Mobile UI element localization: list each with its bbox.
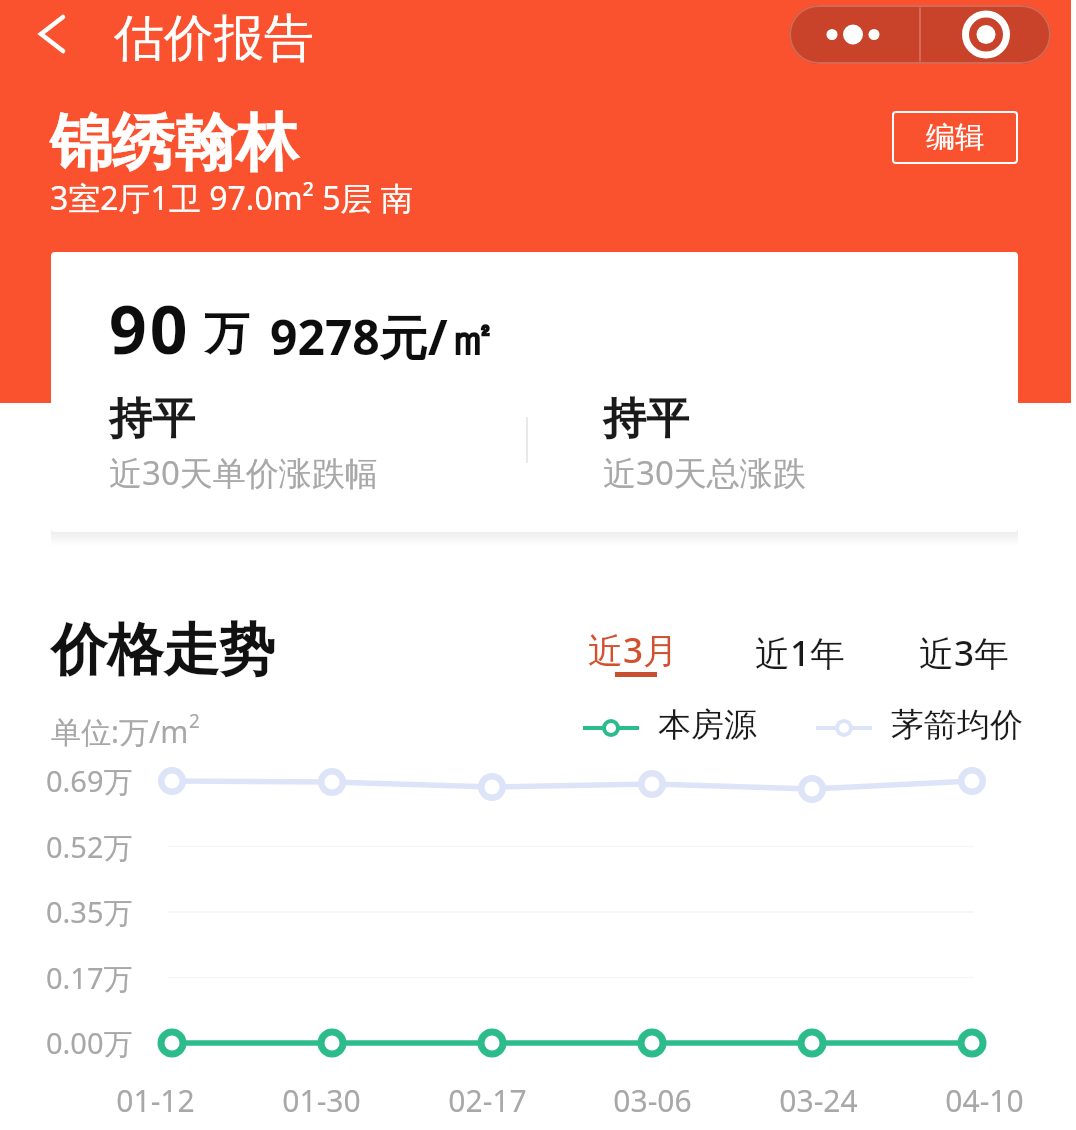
staticText: 近3月 xyxy=(588,626,679,674)
staticText: 0.00万 xyxy=(46,1023,133,1063)
staticText: 近30天单价涨跌幅 xyxy=(109,450,378,495)
staticText: 近1年 xyxy=(755,629,846,677)
staticText: 04-10 xyxy=(945,1080,1024,1121)
staticText: 价格走势 xyxy=(51,615,275,686)
staticText: 3室2厅1卫 97.0m² 5层 南 xyxy=(50,176,413,220)
staticText: 01-30 xyxy=(282,1080,361,1121)
button[interactable]: 茅箭均价 xyxy=(810,706,1005,750)
button[interactable]: 近3月 xyxy=(585,623,695,685)
staticText: 本房源 xyxy=(658,704,757,746)
button[interactable]: 本房源 xyxy=(577,706,772,750)
staticText: 单位:万/m xyxy=(51,711,189,752)
staticText: 01-12 xyxy=(116,1080,195,1121)
staticText: 03-06 xyxy=(613,1080,692,1121)
staticText: 万 xyxy=(204,306,249,363)
staticText: 锦绣翰林 xyxy=(50,104,298,182)
staticText: 近3年 xyxy=(919,629,1010,677)
staticText: 90 xyxy=(109,283,191,373)
staticText: 近30天总涨跌 xyxy=(603,450,806,495)
staticText: 2 xyxy=(189,708,200,734)
button[interactable]: 近1年 xyxy=(755,629,855,677)
staticText: 持平 xyxy=(603,392,689,446)
button[interactable]: Menu xyxy=(789,5,1051,64)
staticText: 茅箭均价 xyxy=(891,704,1023,746)
staticText: 持平 xyxy=(109,392,195,446)
staticText: 0.17万 xyxy=(46,958,133,998)
staticText: 03-24 xyxy=(779,1080,858,1121)
staticText: 编辑 xyxy=(926,119,984,156)
staticText: 0.69万 xyxy=(46,761,133,801)
staticText: 0.35万 xyxy=(46,892,133,932)
staticText: 估价报告 xyxy=(114,7,314,70)
staticText: 0.52万 xyxy=(46,827,133,867)
button[interactable]: 近3年 xyxy=(919,629,1019,677)
staticText: 9278元/㎡ xyxy=(270,304,496,370)
button[interactable]: 编辑 xyxy=(892,111,1018,164)
staticText: 02-17 xyxy=(448,1080,527,1121)
button[interactable]: Back xyxy=(18,9,68,59)
